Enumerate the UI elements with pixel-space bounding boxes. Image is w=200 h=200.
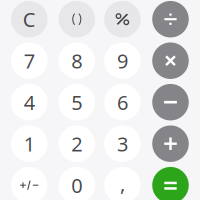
button[interactable]: 9	[104, 42, 141, 79]
button[interactable]: 2	[58, 125, 95, 162]
staticText: 5	[71, 89, 82, 115]
button[interactable]: C	[11, 1, 48, 37]
button[interactable]: Multiply	[152, 42, 189, 79]
button[interactable]: 4	[11, 84, 48, 120]
staticText: 4	[24, 89, 35, 115]
staticText: C	[23, 6, 36, 32]
staticText: 8	[71, 47, 82, 74]
button[interactable]: Minus	[152, 84, 189, 120]
button[interactable]: 5	[58, 84, 95, 120]
button[interactable]: Toggle sign	[11, 167, 48, 200]
button[interactable]: Divide	[152, 1, 189, 37]
button[interactable]: Equals	[152, 167, 189, 200]
staticText: 9	[117, 47, 128, 74]
button[interactable]: 3	[104, 125, 141, 162]
button[interactable]: Plus	[152, 125, 189, 162]
staticText: ,	[120, 170, 125, 196]
button[interactable]: 1	[11, 125, 48, 162]
staticText: 0	[71, 172, 82, 198]
staticText: 6	[117, 89, 128, 115]
button[interactable]: Percent	[104, 1, 141, 37]
button[interactable]: 6	[104, 84, 141, 120]
button[interactable]: 0	[58, 167, 95, 200]
staticText: 3	[117, 130, 128, 157]
staticText: 1	[24, 130, 35, 157]
button[interactable]: ,	[104, 167, 141, 200]
staticText: 2	[71, 130, 82, 157]
button[interactable]: 8	[58, 42, 95, 79]
button[interactable]: Parentheses	[58, 1, 95, 37]
staticText: 7	[24, 47, 35, 74]
button[interactable]: 7	[11, 42, 48, 79]
